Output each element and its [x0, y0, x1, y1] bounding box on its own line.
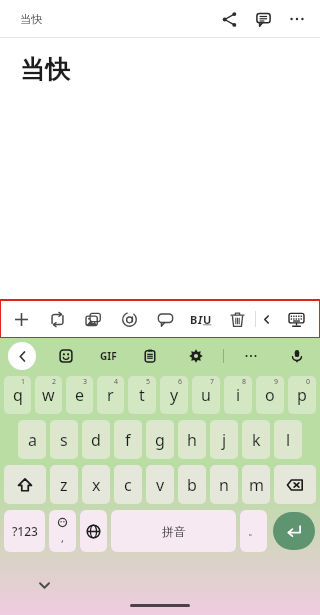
staticText: U	[203, 312, 212, 327]
staticText: x	[92, 474, 101, 496]
button[interactable]: i	[224, 376, 252, 414]
staticText: I	[198, 312, 203, 327]
staticText: ,	[61, 530, 64, 545]
button[interactable]: Enter	[273, 512, 315, 550]
button[interactable]: k	[242, 420, 270, 459]
staticText: e	[75, 384, 85, 406]
button[interactable]: Share	[212, 2, 246, 36]
staticText: c	[124, 474, 132, 496]
button[interactable]: q	[4, 376, 31, 414]
button[interactable]: 。	[240, 510, 267, 552]
button[interactable]: a	[18, 420, 46, 459]
button[interactable]: g	[146, 420, 174, 459]
staticText: l	[286, 429, 291, 451]
staticText: z	[60, 474, 68, 496]
staticText: 5	[146, 377, 151, 387]
button[interactable]: b	[178, 465, 206, 504]
button[interactable]: f	[114, 420, 142, 459]
staticText: B	[190, 312, 198, 327]
staticText: h	[187, 429, 197, 451]
button[interactable]: Shift	[4, 465, 46, 504]
button[interactable]: Collapse	[256, 300, 276, 338]
button[interactable]: o	[256, 376, 284, 414]
staticText: b	[187, 474, 197, 496]
button[interactable]: Backspace	[274, 465, 316, 504]
staticText: ?123	[12, 523, 38, 539]
button[interactable]: n	[210, 465, 238, 504]
staticText: j	[222, 429, 227, 451]
staticText: t	[139, 384, 145, 406]
button[interactable]: Keyboard	[276, 300, 316, 338]
button[interactable]: e	[66, 376, 93, 414]
button[interactable]: More	[238, 343, 264, 369]
button[interactable]: w	[35, 376, 62, 414]
staticText: 0	[306, 377, 311, 387]
button[interactable]: Delete	[219, 300, 255, 338]
staticText: s	[60, 429, 68, 451]
button[interactable]: ?123	[4, 510, 45, 552]
button[interactable]: Comments	[246, 2, 280, 36]
staticText: p	[297, 384, 307, 406]
button[interactable]: Change language	[80, 510, 107, 552]
staticText: a	[28, 429, 37, 451]
staticText: GIF	[100, 349, 117, 363]
staticText: g	[155, 429, 165, 451]
button[interactable]: 拼音	[111, 510, 236, 552]
staticText: 当快	[20, 54, 70, 85]
staticText: 6	[178, 377, 183, 387]
staticText: i	[236, 384, 241, 406]
staticText: w	[42, 384, 55, 406]
staticText: 4	[114, 377, 119, 387]
button[interactable]: Mention	[111, 300, 147, 338]
button[interactable]: Add	[4, 300, 39, 338]
staticText: 9	[274, 377, 279, 387]
button[interactable]: r	[97, 376, 124, 414]
button[interactable]: B	[183, 300, 219, 338]
staticText: f	[125, 429, 131, 451]
button[interactable]: d	[82, 420, 110, 459]
staticText: y	[170, 384, 179, 406]
button[interactable]: Insert image	[75, 300, 111, 338]
button[interactable]: s	[50, 420, 78, 459]
button[interactable]: Back	[8, 342, 36, 370]
staticText: v	[156, 474, 165, 496]
button[interactable]: ,	[49, 510, 76, 552]
button[interactable]: GIF	[100, 349, 117, 363]
button[interactable]: x	[82, 465, 110, 504]
button[interactable]: z	[50, 465, 78, 504]
button[interactable]: Clipboard	[137, 343, 163, 369]
button[interactable]: c	[114, 465, 142, 504]
staticText: 当快	[20, 12, 42, 26]
staticText: 。	[248, 524, 259, 538]
staticText: 7	[210, 377, 215, 387]
staticText: k	[252, 429, 261, 451]
button[interactable]: Comment	[147, 300, 183, 338]
staticText: 拼音	[162, 524, 186, 539]
staticText: r	[107, 384, 114, 406]
button[interactable]: j	[210, 420, 238, 459]
button[interactable]: m	[242, 465, 270, 504]
staticText: u	[201, 384, 211, 406]
staticText: d	[91, 429, 101, 451]
staticText: q	[13, 384, 23, 406]
button[interactable]: Hide keyboard	[32, 573, 56, 597]
button[interactable]: More options	[280, 2, 314, 36]
button[interactable]: Voice input	[284, 343, 310, 369]
staticText: 3	[83, 377, 88, 387]
staticText: 2	[52, 377, 57, 387]
button[interactable]: v	[146, 465, 174, 504]
button[interactable]: y	[160, 376, 188, 414]
staticText: o	[265, 384, 275, 406]
button[interactable]: Sticker	[53, 343, 79, 369]
staticText: m	[249, 474, 264, 496]
button[interactable]: u	[192, 376, 220, 414]
staticText: 1	[21, 377, 26, 387]
button[interactable]: Settings	[183, 343, 209, 369]
button[interactable]: Undo redo	[39, 300, 75, 338]
staticText: 8	[242, 377, 247, 387]
button[interactable]: p	[288, 376, 316, 414]
staticText: n	[219, 474, 229, 496]
button[interactable]: h	[178, 420, 206, 459]
button[interactable]: l	[274, 420, 302, 459]
button[interactable]: t	[128, 376, 156, 414]
